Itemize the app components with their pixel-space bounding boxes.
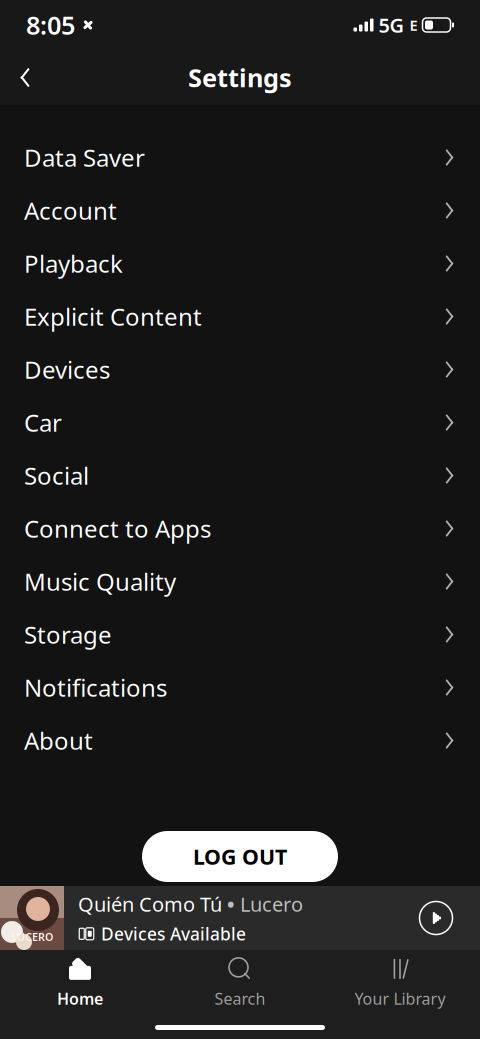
staticText: Home xyxy=(57,988,103,1009)
staticText: 8:05 xyxy=(26,8,75,42)
button[interactable]: Back xyxy=(0,50,50,105)
button[interactable]: Playback xyxy=(0,237,480,290)
button[interactable]: Car xyxy=(0,396,480,449)
staticText: About xyxy=(24,725,93,756)
staticText: Notifications xyxy=(24,672,167,703)
button[interactable]: LOG OUT xyxy=(142,831,338,882)
staticText: Storage xyxy=(24,619,112,650)
button[interactable]: Your Library xyxy=(320,950,480,1016)
button[interactable]: Search xyxy=(160,950,320,1016)
staticText: Social xyxy=(24,460,89,491)
button[interactable]: Account xyxy=(0,184,480,237)
button[interactable]: Data Saver xyxy=(0,131,480,184)
staticText: LOG OUT xyxy=(193,842,287,871)
button[interactable]: Home xyxy=(0,950,160,1016)
staticText: Quién Como Tú xyxy=(78,891,222,917)
staticText: Music Quality xyxy=(24,566,176,597)
button[interactable]: Social xyxy=(0,449,480,502)
staticText: Lucero xyxy=(240,891,303,917)
staticText: Your Library xyxy=(354,988,445,1009)
staticText: 5G xyxy=(378,12,404,38)
button[interactable]: Notifications xyxy=(0,661,480,714)
staticText: LUCERO xyxy=(11,930,53,944)
staticText: Data Saver xyxy=(24,142,145,173)
button[interactable]: LUCERO xyxy=(0,886,480,950)
staticText: Account xyxy=(24,195,117,226)
staticText: Car xyxy=(24,407,62,438)
staticText: Devices xyxy=(24,354,110,385)
staticText: Devices Available xyxy=(101,922,246,945)
button[interactable]: Devices xyxy=(0,343,480,396)
button[interactable]: Connect to Apps xyxy=(0,502,480,555)
staticText: Search xyxy=(214,988,265,1009)
staticText: Playback xyxy=(24,248,123,279)
staticText: • xyxy=(227,891,235,917)
button[interactable]: Play xyxy=(414,896,458,940)
staticText: Settings xyxy=(188,61,292,94)
button[interactable]: Music Quality xyxy=(0,555,480,608)
button[interactable]: Explicit Content xyxy=(0,290,480,343)
staticText: Explicit Content xyxy=(24,301,202,332)
staticText: Connect to Apps xyxy=(24,513,211,544)
staticText: E xyxy=(409,15,417,35)
button[interactable]: Storage xyxy=(0,608,480,661)
button[interactable]: About xyxy=(0,714,480,767)
